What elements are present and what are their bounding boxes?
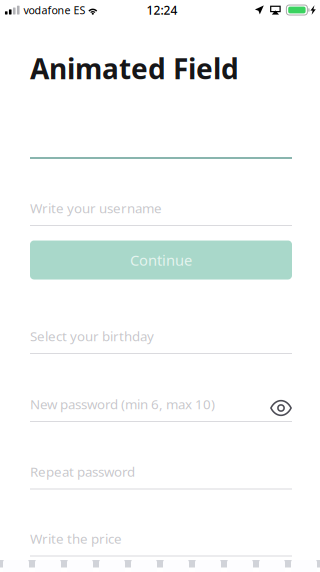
button[interactable]: Select your birthday <box>30 324 292 354</box>
staticText: Animated Field <box>30 50 239 87</box>
button[interactable]: Repeat password <box>30 459 292 489</box>
staticText: Continue <box>130 250 192 270</box>
button[interactable]: Write your username <box>30 196 292 226</box>
staticText: Write your username <box>30 199 162 217</box>
staticText: vodafone ES <box>23 3 85 17</box>
staticText: 12:24 <box>146 2 177 18</box>
staticText: New password (min 6, max 10) <box>30 395 215 413</box>
button[interactable]: Write the price <box>30 526 292 556</box>
staticText: Select your birthday <box>30 327 154 345</box>
button[interactable] <box>30 129 292 159</box>
staticText: Repeat password <box>30 463 135 480</box>
staticText: Write the price <box>30 530 122 547</box>
button[interactable]: Continue <box>30 240 292 279</box>
button[interactable]: New password (min 6, max 10) <box>30 392 292 422</box>
